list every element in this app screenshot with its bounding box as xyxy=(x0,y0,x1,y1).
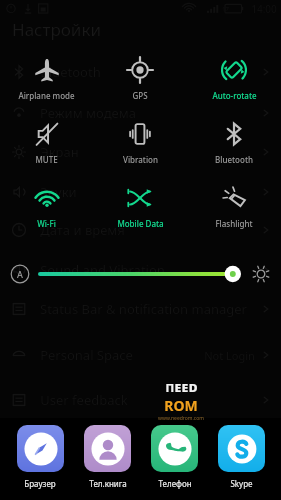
staticText: Vibration xyxy=(123,154,158,165)
button[interactable]: Браузер xyxy=(6,425,74,489)
button[interactable]: Auto-rotate xyxy=(187,55,281,103)
staticText: GPS xyxy=(132,90,148,101)
staticText: ROM xyxy=(164,396,198,415)
staticText: Auto-rotate xyxy=(212,90,257,101)
button[interactable]: Тел.книга xyxy=(74,425,141,489)
button[interactable]: Auto brightness xyxy=(10,264,30,284)
staticText: Personal Space xyxy=(40,346,133,364)
button[interactable]: MUTE xyxy=(0,119,93,167)
staticText: Телефон xyxy=(158,478,192,489)
button[interactable]: Телефон xyxy=(141,425,208,489)
staticText: Экран xyxy=(40,143,79,161)
button[interactable]: Vibration xyxy=(93,119,187,167)
staticText: Настройки xyxy=(12,18,101,41)
staticText: www.needrom.com xyxy=(158,415,204,422)
staticText: Дата и время xyxy=(40,221,125,239)
button[interactable]: Skype xyxy=(208,425,275,489)
staticText: Bluetooth xyxy=(40,63,101,81)
staticText: Status Bar & notification manager xyxy=(40,300,247,318)
staticText: User feedback xyxy=(40,391,128,409)
button[interactable]: Brightness slider xyxy=(38,261,243,287)
staticText: Режим модема xyxy=(40,104,136,122)
staticText: Skype xyxy=(230,478,253,489)
staticText: Wi-Fi xyxy=(37,218,56,229)
button[interactable]: Airplane mode xyxy=(0,55,93,103)
staticText: ᴨᴇᴇᴅ xyxy=(165,376,198,396)
staticText: Тел.книга xyxy=(89,478,127,489)
button[interactable]: Flashlight xyxy=(187,183,281,231)
staticText: Браузер xyxy=(24,478,56,489)
staticText: A xyxy=(17,268,23,280)
staticText: Bluetooth xyxy=(215,154,253,165)
staticText: Звуки xyxy=(40,183,77,201)
button[interactable]: Mobile Data xyxy=(93,183,187,231)
staticText: Sound and Vibration xyxy=(40,261,165,279)
staticText: Flashlight xyxy=(215,218,253,229)
staticText: MUTE xyxy=(35,154,58,165)
button[interactable]: Bluetooth xyxy=(187,119,281,167)
staticText: Mobile Data xyxy=(117,218,164,229)
staticText: Airplane mode xyxy=(18,90,75,101)
button[interactable]: GPS xyxy=(93,55,187,103)
staticText: Advanced xyxy=(40,428,100,446)
button[interactable]: Wi-Fi xyxy=(0,183,93,231)
button[interactable]: Brightness xyxy=(251,264,271,284)
